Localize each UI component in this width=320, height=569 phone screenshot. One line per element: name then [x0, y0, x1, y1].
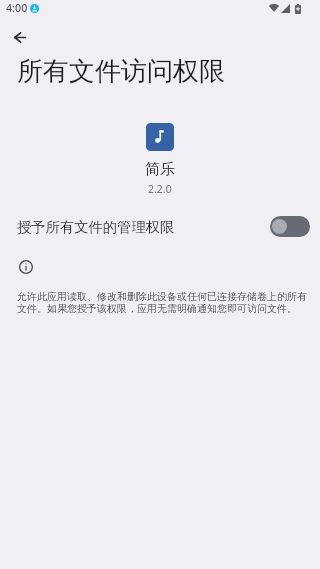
staticText: 授予所有文件的管理权限 — [17, 218, 175, 236]
button[interactable]: Toggle all files access — [270, 216, 310, 237]
staticText: 2.2.0 — [148, 182, 172, 196]
staticText: 允许此应用读取、修改和删除此设备或任何已连接存储卷上的所有文件。如果您授予该权限… — [17, 290, 310, 315]
staticText: 所有文件访问权限 — [17, 55, 225, 88]
button[interactable]: Back — [0, 17, 40, 57]
button[interactable]: 授予所有文件的管理权限 — [0, 206, 320, 247]
staticText: 简乐 — [145, 160, 175, 179]
staticText: 4:00 — [6, 1, 28, 16]
